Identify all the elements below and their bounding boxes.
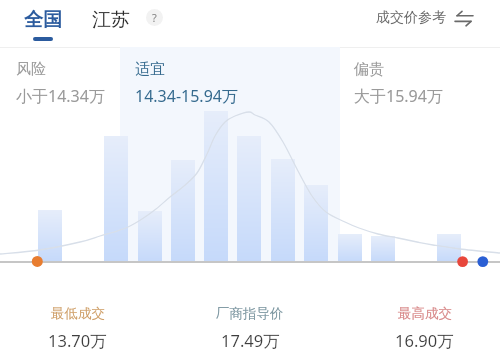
staticText: 厂商指导价 xyxy=(216,305,284,322)
staticText: 风险 xyxy=(16,60,46,79)
button[interactable]: 江苏 xyxy=(86,0,136,46)
button[interactable]: 成交价参考 xyxy=(376,9,473,27)
staticText: 最高成交 xyxy=(398,305,452,322)
staticText: 16.90万 xyxy=(395,329,454,352)
staticText: 13.70万 xyxy=(48,329,107,352)
staticText: 大于15.94万 xyxy=(354,85,443,107)
button[interactable]: 全国 xyxy=(18,0,68,46)
button[interactable]: Help xyxy=(146,9,163,26)
staticText: 江苏 xyxy=(92,8,130,32)
staticText: 全国 xyxy=(24,8,62,32)
staticText: ? xyxy=(152,10,157,25)
staticText: 适宜 xyxy=(135,60,165,79)
staticText: 偏贵 xyxy=(354,60,384,79)
staticText: 最低成交 xyxy=(51,305,105,322)
staticText: 小于14.34万 xyxy=(16,85,105,107)
staticText: 成交价参考 xyxy=(376,9,446,27)
staticText: 14.34-15.94万 xyxy=(135,85,238,107)
staticText: 17.49万 xyxy=(221,329,280,352)
